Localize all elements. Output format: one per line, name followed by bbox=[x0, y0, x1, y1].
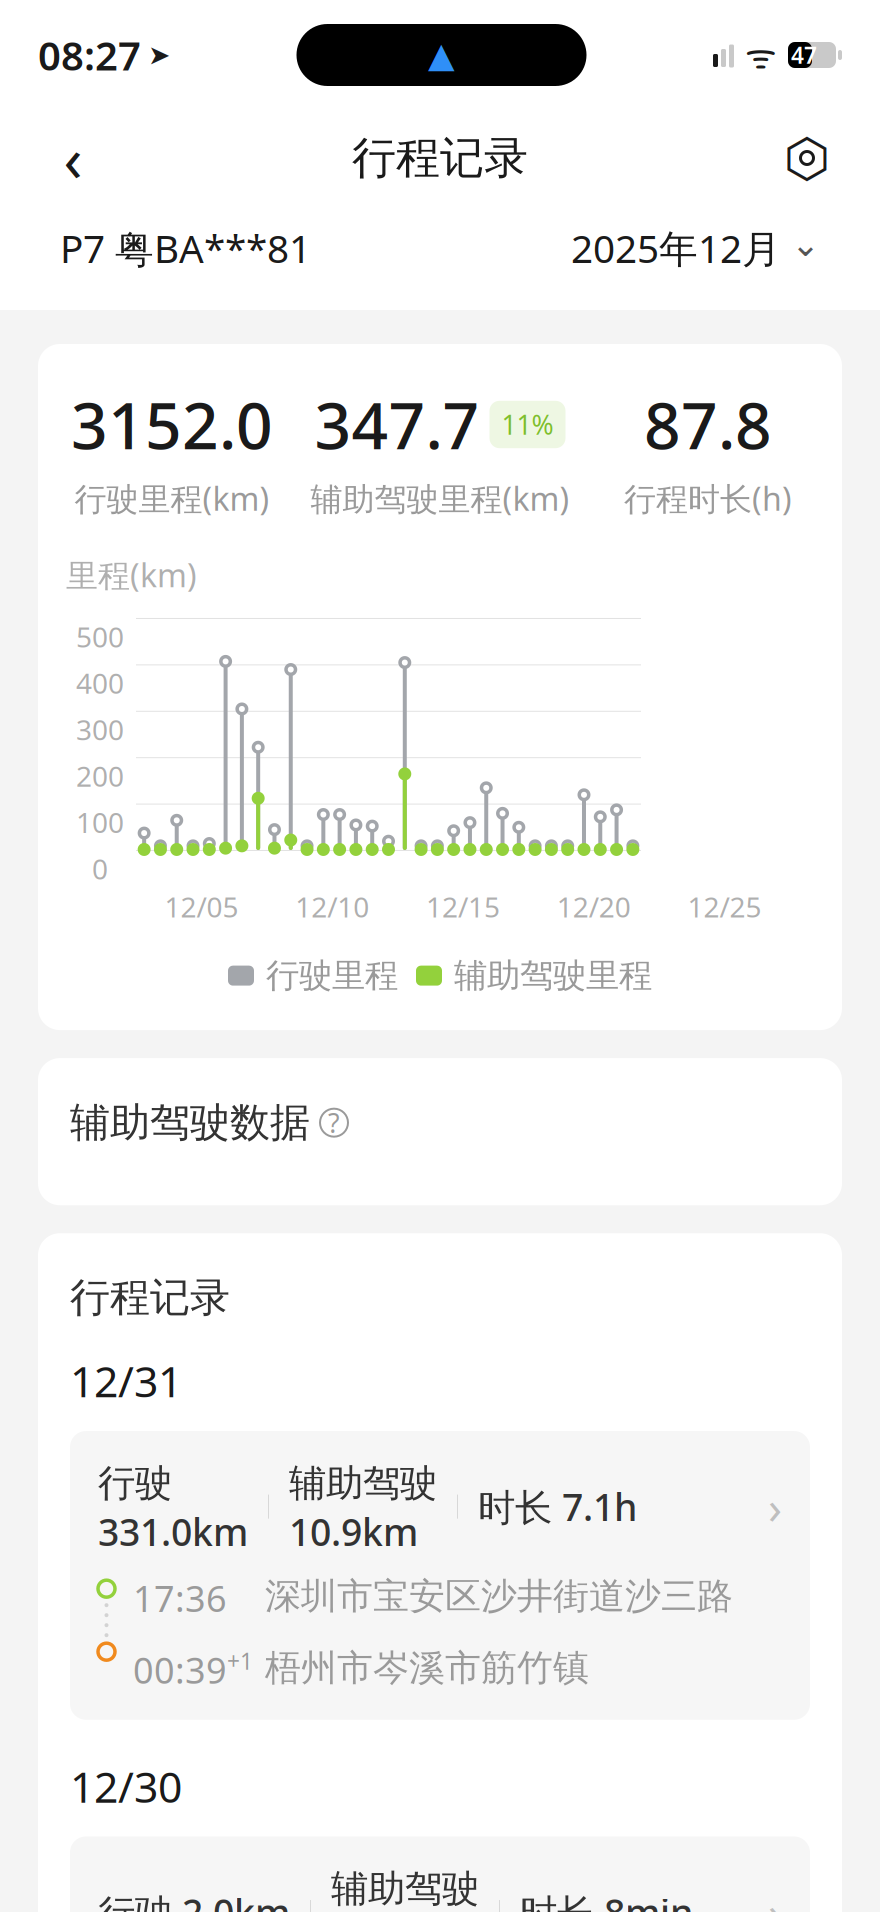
staticText: 12/15 bbox=[426, 888, 500, 925]
staticText: 辅助驾驶里程(km) bbox=[310, 477, 569, 519]
staticText: 行驶里程(km) bbox=[74, 477, 269, 519]
staticText: 辅助驾驶数据 bbox=[70, 1098, 310, 1147]
staticText: ⌄ bbox=[791, 224, 820, 264]
staticText: 行驶里程 bbox=[266, 955, 398, 996]
staticText: › bbox=[768, 1882, 782, 1912]
staticText: 500 bbox=[76, 618, 124, 655]
staticText: 47 bbox=[791, 40, 817, 70]
staticText: 0 bbox=[92, 850, 108, 887]
button[interactable]: 设置 bbox=[772, 123, 842, 193]
staticText: 时长 7.1h bbox=[478, 1482, 637, 1531]
staticText: 12/25 bbox=[688, 888, 762, 925]
staticText: 12/31 bbox=[70, 1352, 182, 1409]
staticText: 12/30 bbox=[70, 1758, 182, 1814]
staticText: ‹ bbox=[63, 117, 82, 199]
staticText: 辅助驾驶 10.9km bbox=[289, 1457, 437, 1556]
staticText: 2025年12月 bbox=[571, 222, 781, 274]
staticText: › bbox=[768, 1476, 782, 1537]
staticText: 里程(km) bbox=[66, 553, 197, 596]
staticText: 行程记录 bbox=[70, 1273, 230, 1322]
staticText: 时长 8min bbox=[520, 1887, 693, 1912]
button[interactable]: 2025年12月 bbox=[571, 222, 820, 274]
staticText: 300 bbox=[76, 711, 124, 748]
staticText: 00:39 bbox=[133, 1646, 227, 1694]
button[interactable]: 辅助驾驶数据 bbox=[38, 1058, 842, 1205]
staticText: 深圳市宝安区沙井街道沙三路 bbox=[265, 1574, 733, 1618]
button[interactable]: 行驶 2.0km bbox=[70, 1836, 810, 1912]
staticText: ➤ bbox=[148, 40, 170, 70]
staticText: 17:36 bbox=[133, 1574, 227, 1622]
staticText: 梧州市岑溪市筋竹镇 bbox=[265, 1646, 589, 1690]
staticText: ᯤ bbox=[745, 32, 777, 78]
staticText: 行驶 2.0km bbox=[98, 1887, 290, 1912]
staticText: 行程时长(h) bbox=[624, 477, 792, 519]
staticText: ▲ bbox=[428, 35, 455, 75]
staticText: 辅助驾驶里程 bbox=[454, 955, 652, 996]
staticText: 12/05 bbox=[164, 888, 238, 925]
staticText: 12/10 bbox=[295, 888, 369, 925]
staticText: 100 bbox=[76, 804, 124, 841]
staticText: ⬡ bbox=[783, 128, 830, 188]
staticText: ? bbox=[328, 1105, 340, 1140]
staticText: P7 粤BA***81 bbox=[60, 222, 311, 274]
staticText: 200 bbox=[76, 757, 124, 794]
button[interactable]: 行驶 331.0km bbox=[70, 1431, 810, 1720]
staticText: +1 bbox=[227, 1646, 253, 1676]
staticText: 347.7 bbox=[314, 382, 479, 467]
staticText: 11% bbox=[501, 407, 553, 442]
staticText: 辅助驾驶 0.0km bbox=[331, 1862, 479, 1912]
staticText: 400 bbox=[76, 664, 124, 702]
button[interactable]: 返回 bbox=[38, 123, 108, 193]
staticText: 08:27 bbox=[38, 28, 141, 81]
staticText: 87.8 bbox=[644, 382, 772, 467]
staticText: 3152.0 bbox=[71, 382, 273, 467]
staticText: 行程记录 bbox=[352, 131, 528, 185]
staticText: 12/20 bbox=[557, 888, 631, 925]
staticText: 行驶 331.0km bbox=[98, 1457, 248, 1556]
